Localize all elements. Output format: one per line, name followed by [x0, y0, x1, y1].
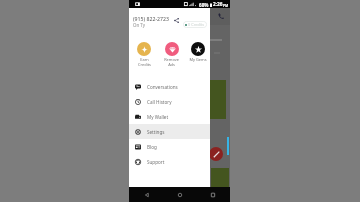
staticText: My Gems	[189, 57, 207, 62]
staticText: My Wallet	[147, 114, 169, 120]
staticText: On Ty	[133, 22, 145, 28]
button[interactable]: Blog	[129, 139, 210, 154]
staticText: 0 Credits	[188, 22, 205, 27]
button[interactable]: Call History	[129, 94, 210, 109]
staticText: Blog	[147, 144, 157, 150]
button[interactable]: Recents	[208, 190, 217, 199]
button[interactable]: 0 Credits	[183, 21, 207, 28]
button[interactable]: Conversations	[129, 79, 210, 94]
button[interactable]: My Gems	[185, 42, 211, 62]
staticText: Conversations	[147, 84, 178, 90]
staticText: Remove Ads	[164, 57, 179, 67]
staticText: Settings	[147, 129, 165, 135]
button[interactable]: Remove Ads	[158, 42, 184, 67]
button[interactable]: My Wallet	[129, 109, 210, 124]
staticText: PM	[223, 3, 229, 8]
button[interactable]: Earn Credits	[131, 42, 157, 67]
staticText: Call History	[147, 99, 172, 105]
button[interactable]: Share	[172, 16, 181, 25]
button[interactable]: Settings	[129, 124, 210, 139]
staticText: 68%	[199, 2, 209, 8]
button[interactable]: Support	[129, 154, 210, 169]
button[interactable]: Home	[175, 190, 184, 199]
staticText: (915) 822-2723	[133, 15, 169, 22]
staticText: Earn Credits	[138, 57, 151, 67]
staticText: Support	[147, 159, 165, 165]
staticText: 2:26	[213, 1, 223, 8]
button[interactable]: Back	[142, 190, 151, 199]
button[interactable]: Compose message	[209, 147, 223, 161]
